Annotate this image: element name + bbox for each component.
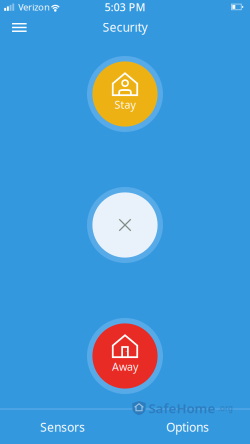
button[interactable]: Disarm [87, 187, 163, 263]
staticText: Sensors [40, 419, 85, 435]
staticText: Stay [114, 98, 135, 112]
button[interactable]: Options [125, 410, 250, 444]
staticText: Away [112, 360, 138, 374]
button[interactable]: Sensors [0, 410, 125, 444]
button[interactable]: Away [87, 318, 163, 394]
staticText: Security [102, 19, 147, 35]
staticText: Verizon [18, 1, 50, 13]
staticText: 5:03 PM [104, 0, 145, 14]
button[interactable]: Stay [87, 56, 163, 132]
staticText: Options [166, 419, 209, 435]
staticText: SafeHome [148, 399, 215, 417]
button[interactable]: Menu [0, 14, 38, 38]
staticText: .org [218, 403, 233, 413]
